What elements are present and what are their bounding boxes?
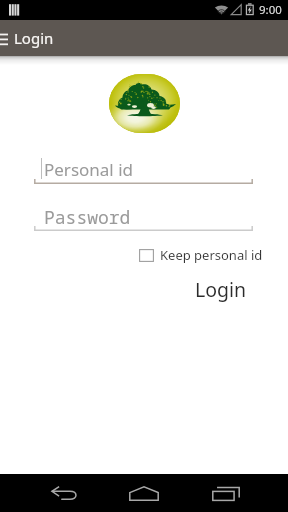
- button[interactable]: Personal id: [34, 156, 253, 184]
- button[interactable]: Password: [34, 203, 253, 231]
- staticText: Keep personal id: [160, 246, 263, 264]
- button[interactable]: Login: [195, 276, 247, 303]
- staticText: 9:00: [259, 2, 282, 18]
- button[interactable]: Open navigation drawer: [0, 20, 13, 56]
- button[interactable]: Back: [34, 474, 94, 512]
- staticText: Personal id: [44, 158, 134, 181]
- staticText: Login: [195, 276, 247, 303]
- staticText: Login: [14, 28, 54, 48]
- button[interactable]: Keep personal id: [139, 246, 263, 264]
- staticText: Password: [44, 205, 131, 230]
- button[interactable]: Recent apps: [196, 474, 256, 512]
- button[interactable]: Home: [116, 474, 172, 512]
